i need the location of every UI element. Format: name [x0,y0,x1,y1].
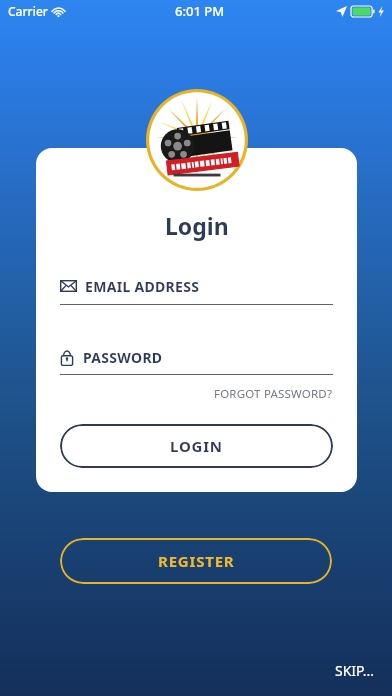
staticText: EMAIL ADDRESS [85,277,200,296]
staticText: PASSWORD [83,348,163,367]
staticText: LOGIN [170,436,223,456]
staticText: REGISTER [158,551,235,571]
staticText: 6:01 PM [175,2,225,20]
staticText: SKIP... [334,661,374,680]
staticText: FORGOT PASSWORD? [214,386,333,402]
button[interactable]: REGISTER [60,538,332,584]
staticText: Carrier [8,3,48,19]
button[interactable]: FORGOT PASSWORD? [214,384,333,404]
button[interactable]: SKIP... [330,657,378,684]
staticText: Login [165,210,229,241]
button[interactable]: LOGIN [60,424,333,468]
